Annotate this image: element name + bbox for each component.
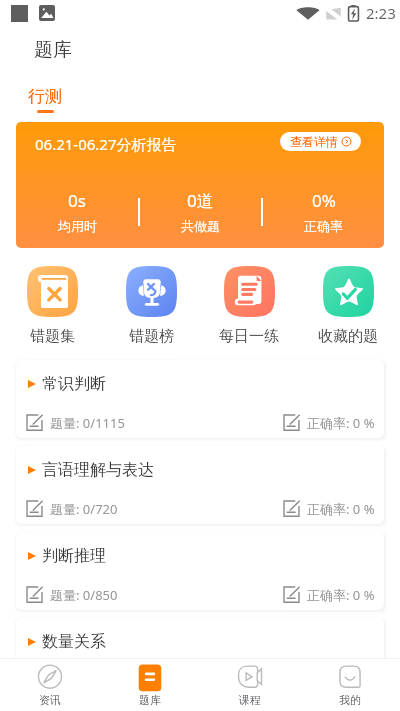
staticText: 言语理解与表达: [42, 460, 154, 480]
staticText: 错题榜: [129, 327, 174, 346]
staticText: 题库: [34, 38, 72, 62]
staticText: 0s: [68, 189, 86, 212]
staticText: 我的: [339, 693, 361, 707]
staticText: 判断推理: [42, 546, 106, 566]
button[interactable]: 每日一练: [203, 266, 295, 346]
button[interactable]: 课程: [200, 659, 300, 711]
staticText: 2:23: [366, 3, 396, 23]
button[interactable]: 判断推理: [16, 532, 384, 610]
staticText: 收藏的题: [318, 327, 378, 346]
staticText: 0道: [187, 189, 214, 212]
staticText: 每日一练: [219, 327, 279, 346]
staticText: 正确率: 0 %: [307, 414, 375, 432]
button[interactable]: 查看详情: [280, 132, 361, 151]
staticText: 均用时: [58, 218, 97, 234]
staticText: 题库: [139, 693, 161, 707]
staticText: 数量关系: [42, 632, 106, 652]
staticText: 题量: 0/850: [50, 586, 118, 604]
staticText: 资讯: [39, 693, 61, 707]
staticText: 题量: 0/600: [50, 672, 118, 690]
button[interactable]: 我的: [300, 659, 400, 711]
staticText: 常识判断: [42, 374, 106, 394]
button[interactable]: 错题集: [6, 266, 98, 346]
button[interactable]: 06.21-06.27分析报告: [16, 122, 384, 248]
staticText: 课程: [239, 693, 261, 707]
staticText: 错题集: [30, 327, 75, 346]
staticText: 正确率: 0 %: [307, 500, 375, 518]
button[interactable]: 常识判断: [16, 360, 384, 438]
staticText: 正确率: 0 %: [307, 672, 375, 690]
button[interactable]: 行测: [28, 74, 62, 113]
staticText: 06.21-06.27分析报告: [35, 134, 177, 154]
staticText: 0%: [312, 189, 336, 212]
staticText: 正确率: [304, 218, 343, 234]
button[interactable]: 错题榜: [105, 266, 197, 346]
button[interactable]: 收藏的题: [302, 266, 394, 346]
staticText: 正确率: 0 %: [307, 586, 375, 604]
button[interactable]: 题库: [100, 659, 200, 711]
button[interactable]: 资讯: [0, 659, 100, 711]
staticText: 行测: [28, 86, 62, 107]
staticText: 题量: 0/1115: [50, 414, 125, 432]
staticText: 题量: 0/720: [50, 500, 118, 518]
staticText: 查看详情: [290, 134, 338, 149]
button[interactable]: 言语理解与表达: [16, 446, 384, 524]
staticText: 共做题: [181, 218, 220, 234]
button[interactable]: 数量关系: [16, 618, 384, 696]
